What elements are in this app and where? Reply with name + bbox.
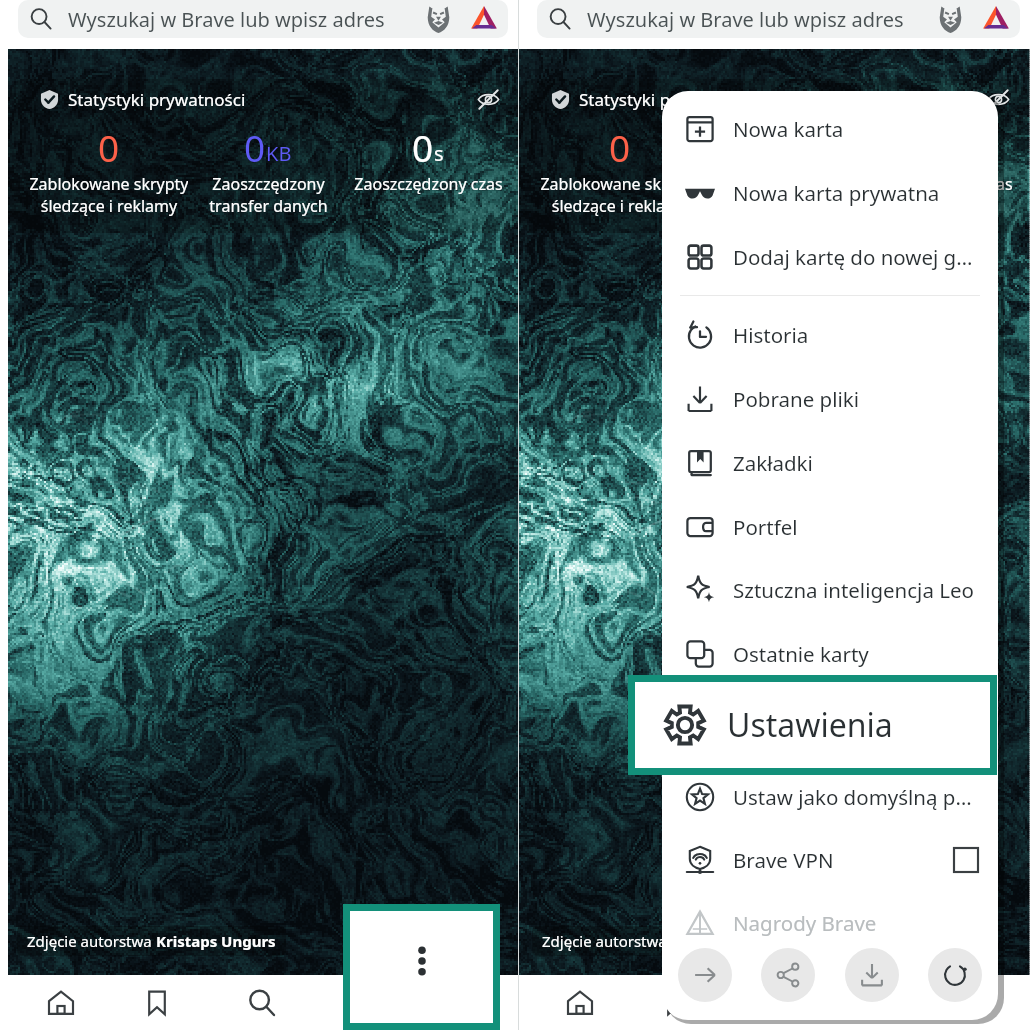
button[interactable]: Home <box>527 975 632 1030</box>
staticText: Zakładki <box>733 449 813 477</box>
button[interactable]: Ostatnie karty <box>662 624 998 684</box>
staticText: Zdjęcie autorstwa <box>27 931 156 951</box>
staticText: 0 <box>609 122 631 172</box>
staticText: s <box>434 140 444 167</box>
staticText: Ustaw jako domyślną prz… <box>733 783 978 811</box>
staticText: Zaoszczędzony transfer danych <box>720 173 839 217</box>
staticText: Wyszukaj w Brave lub wpisz adres <box>68 6 385 33</box>
button[interactable]: Share <box>761 948 815 1002</box>
staticText: Portfel <box>733 513 798 541</box>
staticText: 0 <box>244 122 266 172</box>
staticText: Dodaj kartę do nowej gru… <box>733 243 978 271</box>
button[interactable]: Nagrody Brave <box>662 893 998 953</box>
button[interactable]: Nowa karta <box>662 99 998 159</box>
staticText: 0 <box>756 122 778 172</box>
button[interactable]: Wyszukaj w Brave lub wpisz adres <box>537 0 1020 38</box>
button[interactable]: Historia <box>662 305 998 365</box>
button[interactable]: Home <box>8 975 113 1030</box>
staticText: Pobrane pliki <box>733 385 859 413</box>
staticText: Zdjęcie autorstwa <box>542 931 671 951</box>
staticText: Zaoszczędzony transfer danych <box>209 173 328 217</box>
button[interactable]: Pobrane pliki <box>662 369 998 429</box>
staticText: 0 <box>98 122 120 172</box>
button[interactable]: Portfel <box>662 497 998 557</box>
button[interactable]: Bookmarks <box>629 975 723 1030</box>
staticText: Nowa karta <box>733 115 844 143</box>
staticText: Sztuczna inteligencja Leo <box>733 576 974 604</box>
button[interactable]: More options <box>340 975 500 1030</box>
staticText: Kristaps Ungurs <box>156 931 276 951</box>
staticText: Ostatnie karty <box>733 640 869 668</box>
button[interactable]: Sztuczna inteligencja Leo <box>662 560 998 620</box>
button[interactable]: Search <box>729 975 833 1030</box>
button[interactable]: More options <box>350 911 493 1023</box>
button[interactable]: Ustaw jako domyślną prz… <box>662 767 998 827</box>
staticText: Zablokowane skrypty śledzące i reklamy <box>540 173 700 217</box>
staticText: Wyszukaj w Brave lub wpisz adres <box>587 6 904 33</box>
button[interactable]: Search <box>210 975 314 1030</box>
staticText: Nagrody Brave <box>733 909 877 937</box>
button[interactable]: More options <box>859 975 1019 1030</box>
staticText: Historia <box>733 321 809 349</box>
button[interactable]: Nowa karta prywatna <box>662 163 998 223</box>
button[interactable]: Hide privacy stats <box>987 88 1010 111</box>
staticText: Statystyki prywatności <box>68 88 246 111</box>
button[interactable]: Download <box>845 948 899 1002</box>
staticText: Ustawienia <box>727 703 893 747</box>
staticText: 0 <box>412 122 434 172</box>
button[interactable]: Wyszukaj w Brave lub wpisz adres <box>18 0 508 38</box>
button[interactable]: Bookmarks <box>110 975 204 1030</box>
button[interactable]: Ustawienia <box>635 682 990 768</box>
button[interactable]: Forward <box>678 948 732 1002</box>
staticText: Zaoszczędzony czas <box>864 173 1013 195</box>
button[interactable]: Hide privacy stats <box>477 88 500 111</box>
staticText: Kristaps Ungurs <box>671 931 791 951</box>
staticText: Nowa karta prywatna <box>733 179 940 207</box>
button[interactable]: Reload <box>928 948 982 1002</box>
button[interactable]: Dodaj kartę do nowej gru… <box>662 227 998 287</box>
staticText: Zaoszczędzony czas <box>354 173 503 195</box>
staticText: Zablokowane skrypty śledzące i reklamy <box>29 173 188 217</box>
staticText: Statystyki prywatności <box>579 88 757 111</box>
staticText: KB <box>266 140 292 167</box>
staticText: Brave VPN <box>733 846 834 874</box>
button[interactable]: Brave VPN <box>662 830 998 890</box>
button[interactable]: Zakładki <box>662 433 998 493</box>
